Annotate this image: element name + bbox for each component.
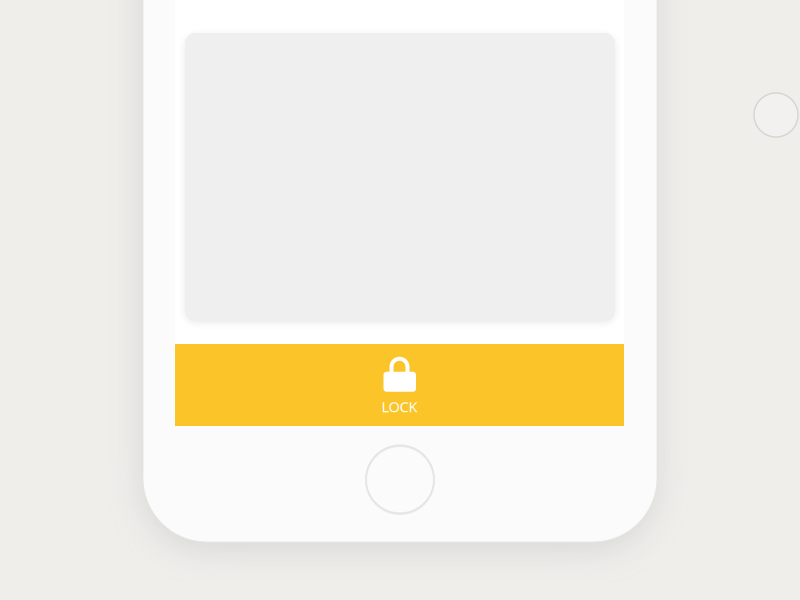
button[interactable]: Lock	[175, 344, 624, 426]
staticText: LOCK	[381, 397, 417, 416]
button[interactable]: Home	[366, 446, 434, 514]
